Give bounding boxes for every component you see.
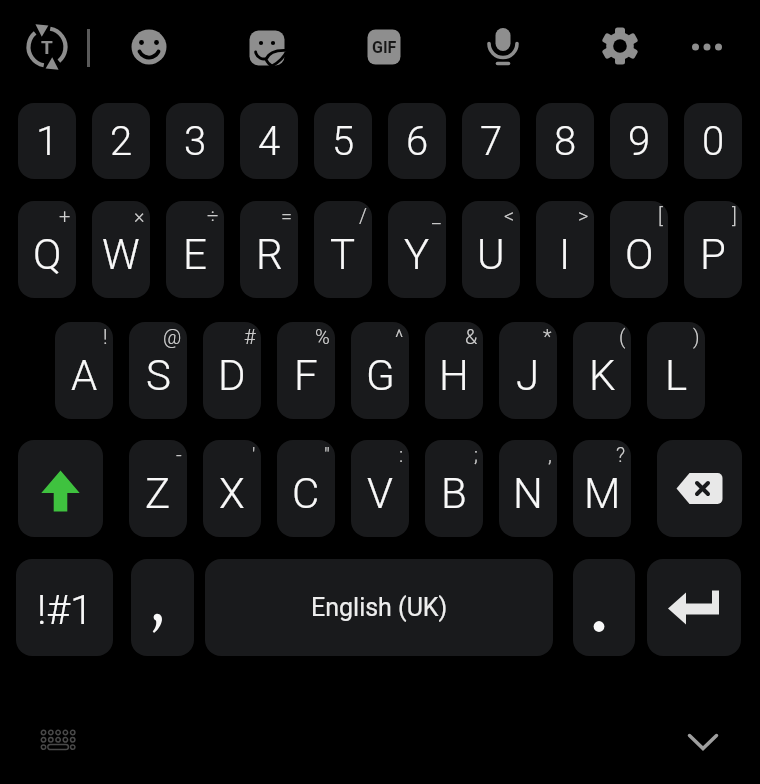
button[interactable]: 1 — [18, 103, 76, 179]
staticText: Q — [33, 230, 62, 279]
staticText: 1 — [36, 118, 59, 165]
staticText: ! — [103, 325, 108, 348]
button[interactable]: 7 — [462, 103, 520, 179]
button[interactable] — [679, 19, 735, 75]
button[interactable]: T — [19, 19, 75, 75]
staticText: J — [516, 351, 540, 400]
staticText: 7 — [480, 118, 503, 165]
button[interactable]: A — [55, 322, 113, 419]
staticText: < — [504, 204, 515, 227]
button[interactable] — [474, 19, 530, 75]
button[interactable]: GIF — [356, 19, 412, 75]
staticText: ' — [252, 443, 256, 466]
staticText: : — [399, 443, 404, 466]
button[interactable] — [131, 559, 194, 656]
button[interactable] — [592, 19, 648, 75]
button[interactable] — [573, 559, 635, 656]
button[interactable]: 8 — [536, 103, 594, 179]
staticText: W — [102, 230, 140, 279]
staticText: H — [439, 351, 469, 400]
button[interactable]: Y — [388, 201, 446, 298]
staticText: × — [134, 204, 145, 227]
staticText: / — [359, 204, 367, 227]
button[interactable]: W — [92, 201, 150, 298]
staticText: - — [176, 443, 182, 466]
staticText: ; — [474, 443, 478, 466]
button[interactable]: English (UK) — [205, 559, 553, 656]
staticText: E — [183, 230, 207, 279]
staticText: M — [584, 469, 621, 518]
button[interactable]: R — [240, 201, 298, 298]
button[interactable]: B — [425, 440, 483, 537]
button[interactable]: D — [203, 322, 261, 419]
button[interactable]: Z — [129, 440, 187, 537]
button[interactable]: C — [277, 440, 335, 537]
button[interactable]: 6 — [388, 103, 446, 179]
button[interactable]: I — [536, 201, 594, 298]
button[interactable] — [657, 440, 742, 537]
staticText: T — [330, 230, 356, 279]
button[interactable]: V — [351, 440, 409, 537]
button[interactable]: 4 — [240, 103, 298, 179]
button[interactable]: 0 — [684, 103, 742, 179]
button[interactable]: S — [129, 322, 187, 419]
staticText: 5 — [332, 118, 355, 165]
staticText: 3 — [184, 118, 207, 165]
button[interactable]: U — [462, 201, 520, 298]
button[interactable]: 5 — [314, 103, 372, 179]
staticText: ) — [693, 325, 700, 348]
staticText: 8 — [554, 118, 577, 165]
staticText: X — [219, 469, 245, 518]
staticText: 0 — [702, 118, 725, 165]
staticText: Z — [145, 469, 171, 518]
staticText: Y — [404, 230, 430, 279]
staticText: [ — [658, 204, 663, 227]
button[interactable]: N — [499, 440, 557, 537]
button[interactable]: F — [277, 322, 335, 419]
button[interactable]: J — [499, 322, 557, 419]
button[interactable]: Q — [18, 201, 76, 298]
staticText: G — [366, 351, 395, 400]
staticText: L — [665, 351, 688, 400]
button[interactable]: 3 — [166, 103, 224, 179]
button[interactable]: H — [425, 322, 483, 419]
staticText: N — [513, 469, 543, 518]
button[interactable]: !#1 — [16, 559, 113, 656]
staticText: @ — [163, 325, 182, 348]
button[interactable]: K — [573, 322, 631, 419]
button[interactable]: O — [610, 201, 668, 298]
button[interactable]: E — [166, 201, 224, 298]
staticText: % — [315, 325, 330, 348]
button[interactable] — [647, 559, 741, 656]
staticText: _ — [432, 204, 441, 227]
button[interactable]: M — [573, 440, 631, 537]
button[interactable] — [30, 712, 84, 766]
staticText: K — [589, 351, 616, 400]
staticText: = — [281, 204, 293, 227]
staticText: A — [71, 351, 98, 400]
button[interactable]: 2 — [92, 103, 150, 179]
button[interactable] — [239, 20, 295, 76]
staticText: ] — [732, 204, 737, 227]
button[interactable]: P — [684, 201, 742, 298]
staticText: 6 — [406, 118, 429, 165]
button[interactable]: T — [314, 201, 372, 298]
staticText: + — [59, 204, 71, 227]
staticText: R — [256, 230, 283, 279]
staticText: > — [578, 204, 589, 227]
button[interactable] — [676, 714, 730, 768]
button[interactable] — [121, 19, 177, 75]
staticText: GIF — [372, 38, 397, 57]
button[interactable]: X — [203, 440, 261, 537]
staticText: D — [218, 351, 246, 400]
staticText: 4 — [258, 118, 281, 165]
staticText: V — [367, 469, 393, 518]
staticText: * — [543, 325, 552, 348]
staticText: S — [146, 351, 171, 400]
staticText: P — [700, 230, 726, 279]
button[interactable]: L — [647, 322, 705, 419]
button[interactable] — [18, 440, 103, 537]
button[interactable]: G — [351, 322, 409, 419]
staticText: !#1 — [37, 586, 93, 634]
button[interactable]: 9 — [610, 103, 668, 179]
